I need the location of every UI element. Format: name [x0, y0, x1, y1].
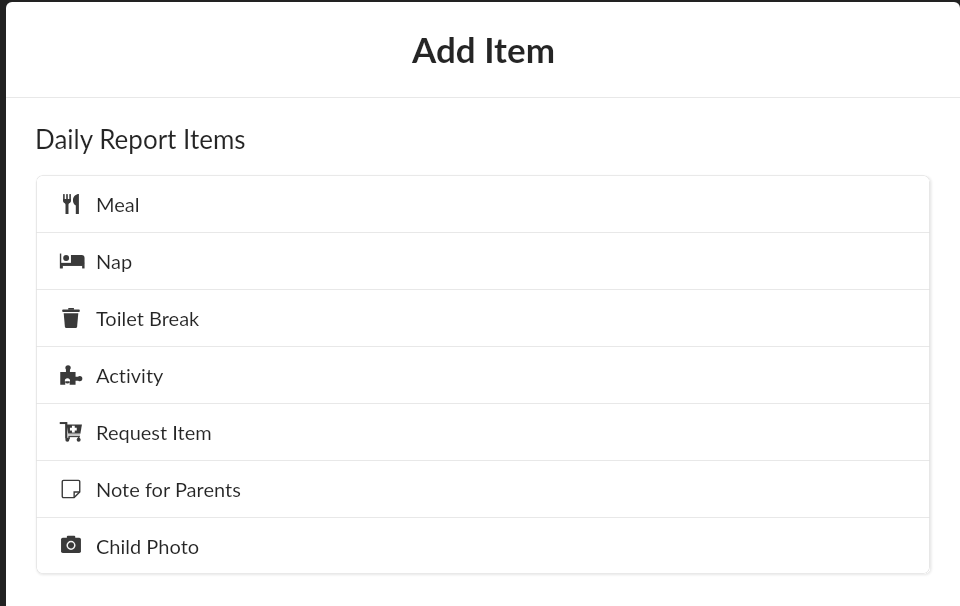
other: Note for parents icon	[58, 476, 84, 502]
button[interactable]: Meal icon	[36, 175, 930, 232]
button[interactable]: Note for parents icon	[36, 460, 930, 517]
other: Activity icon	[58, 362, 84, 388]
staticText: Daily Report Items	[35, 123, 246, 154]
other: Nap icon	[58, 248, 84, 274]
button[interactable]: Child photo icon	[36, 517, 930, 574]
button[interactable]: Nap icon	[36, 232, 930, 289]
other: Request item icon	[58, 419, 84, 445]
staticText: Nap	[96, 249, 133, 273]
button[interactable]: Activity icon	[36, 346, 930, 403]
other: Meal icon	[58, 191, 84, 217]
staticText: Add Item	[412, 28, 555, 70]
staticText: Note for Parents	[96, 477, 241, 501]
staticText: Activity	[96, 363, 164, 387]
staticText: Toilet Break	[96, 306, 200, 330]
staticText: Request Item	[96, 420, 212, 444]
other: Child photo icon	[58, 533, 84, 559]
other: Toilet break icon	[58, 305, 84, 331]
button[interactable]: Toilet break icon	[36, 289, 930, 346]
staticText: Child Photo	[96, 534, 200, 558]
button[interactable]: Request item icon	[36, 403, 930, 460]
staticText: Meal	[96, 192, 140, 216]
